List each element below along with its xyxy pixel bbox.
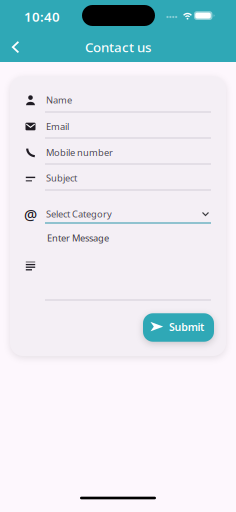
staticText: Mobile number xyxy=(46,146,113,159)
staticText: Email xyxy=(46,120,69,133)
staticText: Select Category xyxy=(46,208,112,220)
staticText: Subject xyxy=(46,172,77,184)
staticText: Name xyxy=(46,94,72,106)
staticText: @ xyxy=(24,205,37,224)
staticText: Enter Message xyxy=(47,232,109,244)
staticText: Submit xyxy=(169,320,204,334)
staticText: 10:40 xyxy=(24,8,60,25)
staticText: Contact us xyxy=(85,38,151,56)
